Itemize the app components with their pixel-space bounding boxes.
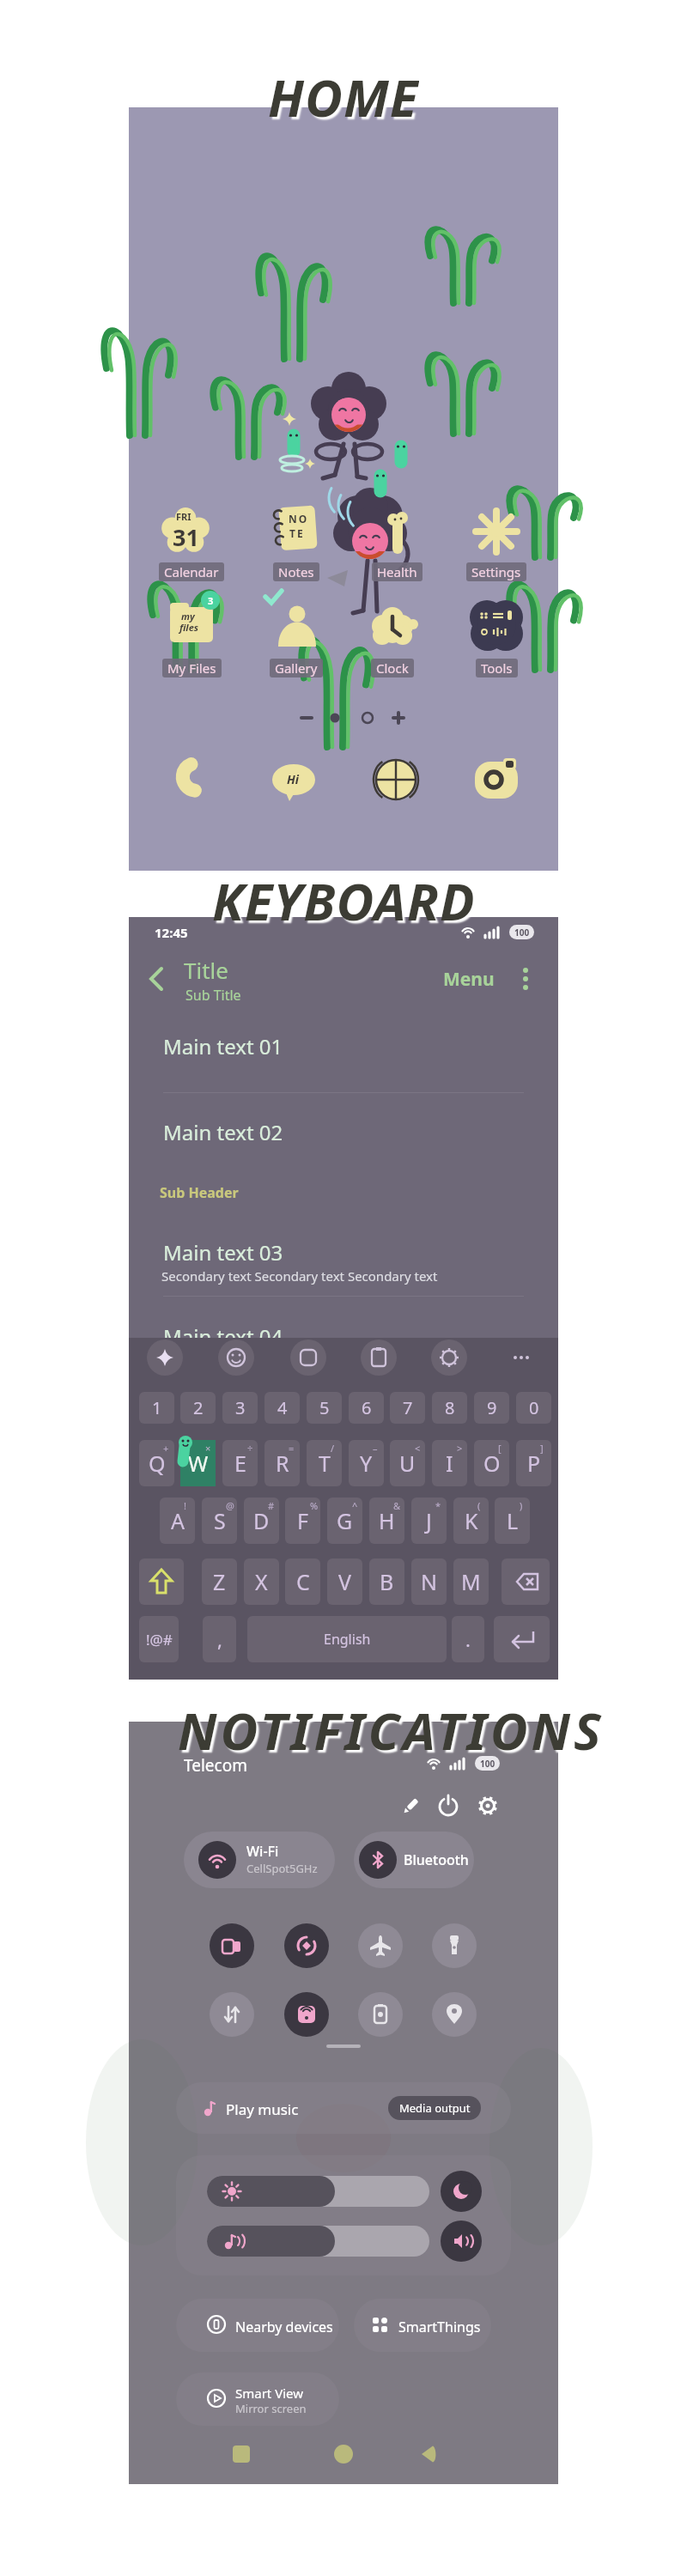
button[interactable]: R <box>264 1440 300 1486</box>
button[interactable]: Main text 02 <box>163 1118 283 1146</box>
button[interactable] <box>176 2299 339 2352</box>
button[interactable]: Q <box>139 1440 174 1486</box>
button[interactable]: English <box>247 1616 447 1662</box>
button[interactable]: 1 <box>139 1392 174 1424</box>
button[interactable] <box>354 2299 491 2352</box>
button[interactable]: Z <box>202 1558 237 1605</box>
button[interactable]: 6 <box>349 1392 384 1424</box>
button[interactable] <box>284 1992 329 2037</box>
button[interactable]: T <box>307 1440 342 1486</box>
button[interactable]: Menu <box>443 967 495 992</box>
button[interactable] <box>474 757 519 802</box>
button[interactable] <box>398 1794 423 1818</box>
button[interactable]: Y <box>349 1440 384 1486</box>
button[interactable]: M <box>453 1558 489 1605</box>
button[interactable] <box>210 1992 254 2037</box>
button[interactable]: Bluetooth <box>354 1832 474 1888</box>
button[interactable]: My Files <box>144 598 239 677</box>
staticText: F <box>297 1506 308 1535</box>
button[interactable] <box>180 1440 216 1486</box>
button[interactable] <box>271 757 316 802</box>
button[interactable] <box>358 1923 403 1968</box>
button[interactable]: S <box>202 1498 237 1544</box>
button[interactable] <box>139 1558 184 1605</box>
button[interactable]: 2 <box>180 1392 216 1424</box>
button[interactable]: A <box>160 1498 195 1544</box>
button[interactable]: 0 <box>516 1392 551 1424</box>
button[interactable] <box>232 2445 251 2464</box>
button[interactable]: B <box>369 1558 404 1605</box>
staticText: 7 <box>403 1396 413 1419</box>
button[interactable]: Health <box>350 501 444 581</box>
button[interactable]: U <box>390 1440 425 1486</box>
button[interactable]: Settings <box>449 501 544 581</box>
button[interactable] <box>290 1340 326 1376</box>
button[interactable]: 3 <box>222 1392 258 1424</box>
button[interactable] <box>210 1923 254 1968</box>
button[interactable]: Play music <box>226 2099 299 2119</box>
button[interactable] <box>207 2176 429 2207</box>
button[interactable]: E <box>222 1440 258 1486</box>
button[interactable] <box>476 1794 500 1818</box>
staticText: Calendar <box>164 563 219 580</box>
button[interactable]: Tools <box>449 598 544 677</box>
button[interactable]: Notes <box>249 501 343 581</box>
button[interactable] <box>494 1616 550 1662</box>
button[interactable]: V <box>327 1558 362 1605</box>
button[interactable]: Main text 01 <box>163 1032 283 1060</box>
button[interactable] <box>171 756 216 800</box>
button[interactable] <box>441 2171 482 2212</box>
button[interactable]: Clock <box>345 598 440 677</box>
staticText: / <box>331 1442 335 1455</box>
button[interactable]: I <box>432 1440 467 1486</box>
button[interactable]: L <box>495 1498 530 1544</box>
button[interactable] <box>207 2226 429 2257</box>
staticText: Sub Header <box>160 1183 239 1202</box>
button[interactable]: !@# <box>139 1616 179 1662</box>
button[interactable]: X <box>244 1558 279 1605</box>
staticText: Secondary text Secondary text Secondary … <box>161 1267 438 1285</box>
button[interactable] <box>441 2221 482 2262</box>
button[interactable] <box>432 1992 477 2037</box>
button[interactable]: 5 <box>307 1392 342 1424</box>
button[interactable]: K <box>453 1498 489 1544</box>
button[interactable] <box>374 757 418 802</box>
button[interactable]: P <box>516 1440 551 1486</box>
button[interactable]: F <box>285 1498 320 1544</box>
button[interactable]: J <box>411 1498 447 1544</box>
button[interactable] <box>502 1558 550 1605</box>
button[interactable] <box>432 1923 477 1968</box>
button[interactable]: H <box>369 1498 404 1544</box>
staticText: 3 <box>235 1396 246 1419</box>
button[interactable]: D <box>244 1498 279 1544</box>
button[interactable] <box>431 1340 467 1376</box>
button[interactable] <box>517 967 534 991</box>
button[interactable] <box>176 2372 339 2426</box>
button[interactable]: . <box>452 1616 484 1662</box>
button[interactable]: 4 <box>264 1392 300 1424</box>
button[interactable]: Main text 03 <box>163 1238 283 1267</box>
button[interactable]: , <box>203 1616 236 1662</box>
button[interactable]: 8 <box>432 1392 467 1424</box>
button[interactable] <box>334 2445 353 2464</box>
button[interactable] <box>436 1794 460 1818</box>
button[interactable]: 9 <box>474 1392 509 1424</box>
button[interactable]: N <box>411 1558 447 1605</box>
button[interactable] <box>419 2445 438 2464</box>
button[interactable] <box>147 1340 183 1376</box>
button[interactable]: Wi-Fi <box>184 1832 335 1888</box>
button[interactable]: 7 <box>390 1392 425 1424</box>
staticText: Main text 04 <box>163 1322 283 1351</box>
button[interactable]: Media output <box>388 2096 481 2120</box>
button[interactable] <box>148 967 165 991</box>
button[interactable]: C <box>285 1558 320 1605</box>
button[interactable]: Gallery <box>249 598 343 677</box>
button[interactable] <box>218 1340 254 1376</box>
button[interactable] <box>284 1923 329 1968</box>
button[interactable]: O <box>474 1440 509 1486</box>
button[interactable] <box>361 1340 397 1376</box>
button[interactable] <box>358 1992 403 2037</box>
button[interactable]: G <box>327 1498 362 1544</box>
button[interactable] <box>503 1340 539 1376</box>
button[interactable]: Calendar <box>144 501 239 581</box>
